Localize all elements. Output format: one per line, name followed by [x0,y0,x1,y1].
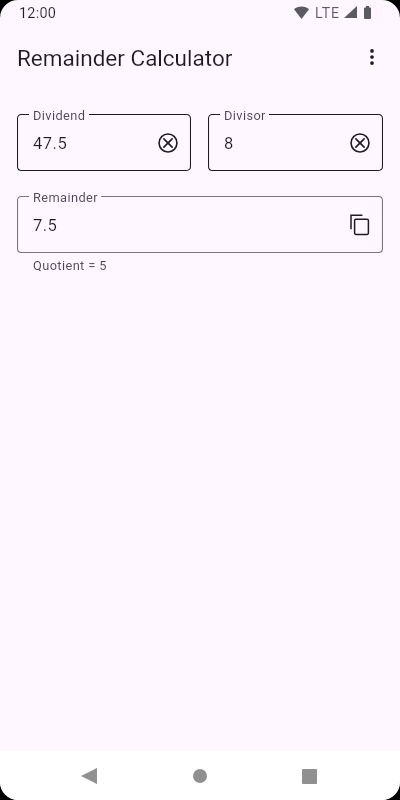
staticText: Dividend [33,108,86,123]
staticText: Divisor [224,108,266,123]
staticText: 12:00 [19,5,57,22]
staticText: 7.5 [33,216,58,235]
staticText: Quotient = 5 [33,258,107,273]
button[interactable]: More options [348,33,396,81]
staticText: Remainder [33,190,98,205]
button[interactable]: Clear [146,121,190,165]
button[interactable]: Back [65,752,113,800]
staticText: 47.5 [33,134,68,153]
button[interactable]: Clear [338,121,382,165]
staticText: Remainder Calculator [17,45,233,71]
staticText: 8 [224,134,234,153]
staticText: LTE [315,5,340,22]
button[interactable]: Recents [285,752,333,800]
button[interactable]: Copy [338,203,382,247]
button[interactable]: Home [176,752,224,800]
